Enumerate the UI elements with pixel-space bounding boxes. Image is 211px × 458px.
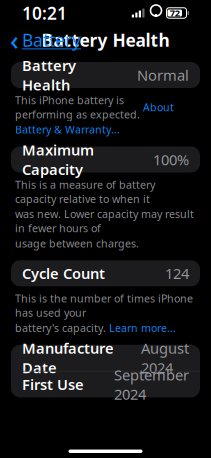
staticText: 72 [170, 7, 180, 19]
staticText: This is the number of times iPhone has u… [15, 291, 193, 320]
staticText: 100% [153, 150, 189, 169]
staticText: Battery Health [22, 55, 76, 94]
button[interactable]: Manufacture Date [11, 345, 200, 371]
staticText: Normal [137, 65, 189, 85]
staticText: battery's capacity. [15, 321, 109, 335]
staticText: This iPhone battery is performing as exp… [15, 93, 143, 121]
staticText: usage between charges. [15, 236, 139, 250]
staticText: About [143, 100, 174, 114]
button[interactable]: Maximum Capacity [11, 146, 200, 172]
staticText: Learn more... [109, 321, 176, 335]
staticText: This is a measure of battery capacity re… [15, 177, 155, 206]
staticText: Manufacture Date [22, 338, 114, 377]
button[interactable]: First Use [11, 371, 200, 397]
staticText: Battery & Warranty... [15, 122, 120, 136]
button[interactable]: ‹ [8, 20, 83, 60]
staticText: ‹ [10, 22, 19, 58]
staticText: September 2024 [114, 365, 189, 404]
staticText: was new. Lower capacity may result in fe… [15, 207, 194, 235]
button[interactable]: Battery Health [11, 62, 200, 88]
staticText: Cycle Count [22, 264, 105, 283]
staticText: 10:21 [22, 1, 67, 24]
staticText: Battery Health [41, 28, 169, 51]
staticText: First Use [22, 375, 84, 394]
staticText: Battery [22, 28, 81, 51]
staticText: August 2024 [141, 338, 189, 377]
button[interactable]: Cycle Count [11, 260, 200, 286]
staticText: 124 [165, 264, 189, 283]
staticText: Maximum Capacity [22, 140, 94, 179]
